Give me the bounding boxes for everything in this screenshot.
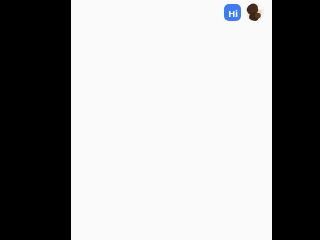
button[interactable]: Hi greeting (224, 4, 241, 21)
staticText: Hi (228, 7, 238, 19)
button[interactable]: Profile avatar (246, 3, 264, 21)
